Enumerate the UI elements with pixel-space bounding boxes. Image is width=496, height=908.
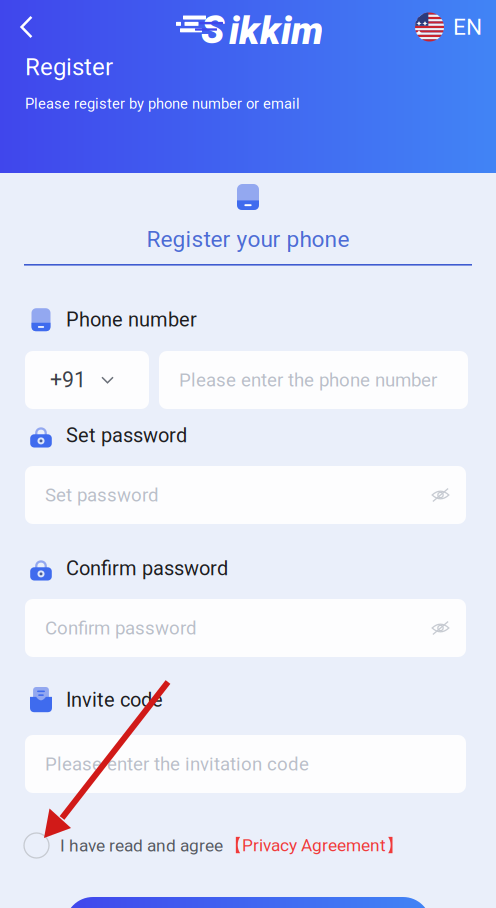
staticText: +91 <box>50 367 86 392</box>
button[interactable]: Back <box>0 3 47 42</box>
staticText: ✦✦✦ ✦✦✦ <box>416 1 428 37</box>
button[interactable]: ✦✦✦ ✦✦✦ <box>415 0 496 45</box>
staticText: Please enter the invitation code <box>45 753 309 775</box>
staticText: Invite code <box>66 688 163 712</box>
staticText: Phone number <box>66 308 197 331</box>
staticText: 【Privacy Agreement】 <box>225 835 403 856</box>
button[interactable]: 【Privacy Agreement】 <box>223 835 403 856</box>
button[interactable]: +91 <box>25 351 149 409</box>
staticText: Please enter the phone number <box>179 369 437 391</box>
staticText: Please register by phone number or email <box>25 95 300 112</box>
staticText: Confirm password <box>45 617 197 639</box>
staticText: I have read and agree <box>60 835 223 856</box>
staticText: Set password <box>66 424 187 447</box>
staticText: S <box>201 7 224 53</box>
staticText: Register <box>25 53 113 81</box>
staticText: ikkim <box>229 8 323 54</box>
staticText: Register your phone <box>146 226 349 253</box>
button[interactable]: Show password <box>423 471 466 518</box>
button[interactable]: Register <box>65 897 431 908</box>
staticText: EN <box>453 14 482 40</box>
button[interactable]: Show password <box>423 604 466 651</box>
staticText: Set password <box>45 484 159 506</box>
button[interactable]: Agree to the privacy agreement <box>24 833 49 858</box>
staticText: Confirm password <box>66 557 228 580</box>
